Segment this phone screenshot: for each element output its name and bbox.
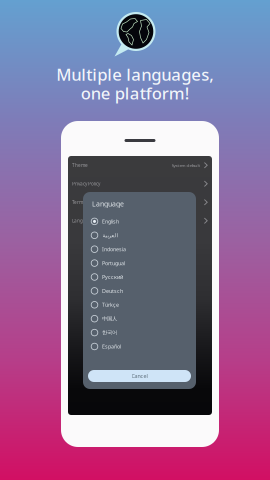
button[interactable]: Deutsch [83, 284, 196, 298]
staticText: System default [172, 162, 201, 168]
button[interactable]: Terms of Use [68, 193, 212, 211]
button[interactable]: Indonesia [83, 242, 196, 256]
button[interactable]: English [83, 214, 196, 228]
button[interactable]: Privacy Policy [68, 174, 212, 193]
staticText: Language [92, 199, 124, 208]
staticText: Русский [102, 273, 123, 281]
staticText: 中国人 [102, 315, 117, 322]
staticText: Indonesia [102, 246, 126, 253]
button[interactable]: Language [68, 211, 212, 230]
staticText: Language [72, 218, 95, 224]
button[interactable]: Cancel [88, 370, 191, 382]
staticText: Cancel [131, 372, 147, 380]
staticText: Privacy Policy [72, 181, 100, 187]
staticText: Multiple languages, [56, 63, 214, 86]
staticText: 한국어 [102, 329, 117, 336]
button[interactable]: 한국어 [83, 326, 196, 339]
staticText: Deutsch [102, 287, 123, 294]
button[interactable]: Theme [68, 156, 212, 174]
button[interactable]: Portugual [83, 256, 196, 270]
button[interactable]: العربية [83, 228, 196, 242]
button[interactable]: Türkçe [83, 298, 196, 312]
staticText: Theme [72, 162, 88, 168]
staticText: English [102, 218, 119, 225]
staticText: Español [102, 343, 121, 350]
staticText: Terms of Use [72, 199, 100, 205]
staticText: Türkçe [102, 301, 119, 308]
staticText: one platform! [80, 82, 189, 104]
staticText: Portugual [102, 260, 125, 267]
button[interactable]: Español [83, 339, 196, 353]
staticText: العربية [102, 232, 117, 238]
button[interactable]: 中国人 [83, 312, 196, 326]
button[interactable]: Русский [83, 270, 196, 284]
